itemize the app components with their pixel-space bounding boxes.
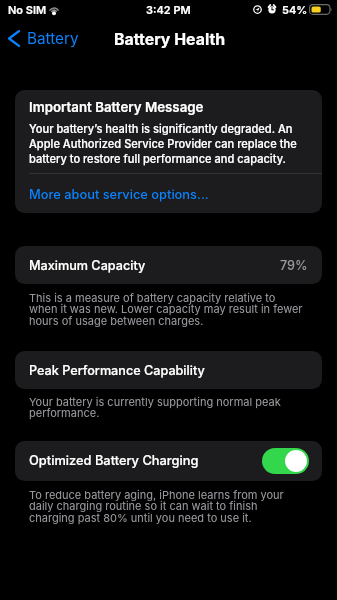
staticText: Your battery’s health is significantly d… bbox=[29, 122, 309, 165]
staticText: Battery bbox=[27, 29, 79, 48]
staticText: Maximum Capacity bbox=[29, 258, 146, 273]
button[interactable]: More about service options... bbox=[15, 175, 322, 214]
button[interactable]: Battery bbox=[7, 27, 79, 50]
button[interactable]: Peak Performance Capability bbox=[15, 351, 322, 389]
staticText: Your battery is currently supporting nor… bbox=[29, 395, 305, 420]
button[interactable]: Optimized Battery Charging bbox=[15, 441, 322, 481]
staticText: No SIM bbox=[8, 3, 47, 16]
staticText: This is a measure of battery capacity re… bbox=[29, 291, 305, 328]
staticText: Important Battery Message bbox=[29, 99, 204, 115]
button[interactable]: Maximum Capacity bbox=[15, 246, 322, 284]
staticText: More about service options... bbox=[29, 187, 209, 203]
staticText: Peak Performance Capability bbox=[29, 363, 205, 378]
staticText: 3:42 PM bbox=[146, 3, 191, 16]
button[interactable]: Optimized Battery Charging toggle, on bbox=[262, 448, 309, 474]
staticText: 79% bbox=[280, 258, 308, 273]
staticText: Battery Health bbox=[114, 30, 226, 49]
staticText: Optimized Battery Charging bbox=[29, 453, 199, 469]
staticText: To reduce battery aging, iPhone learns f… bbox=[29, 488, 305, 525]
staticText: 54% bbox=[282, 3, 308, 16]
